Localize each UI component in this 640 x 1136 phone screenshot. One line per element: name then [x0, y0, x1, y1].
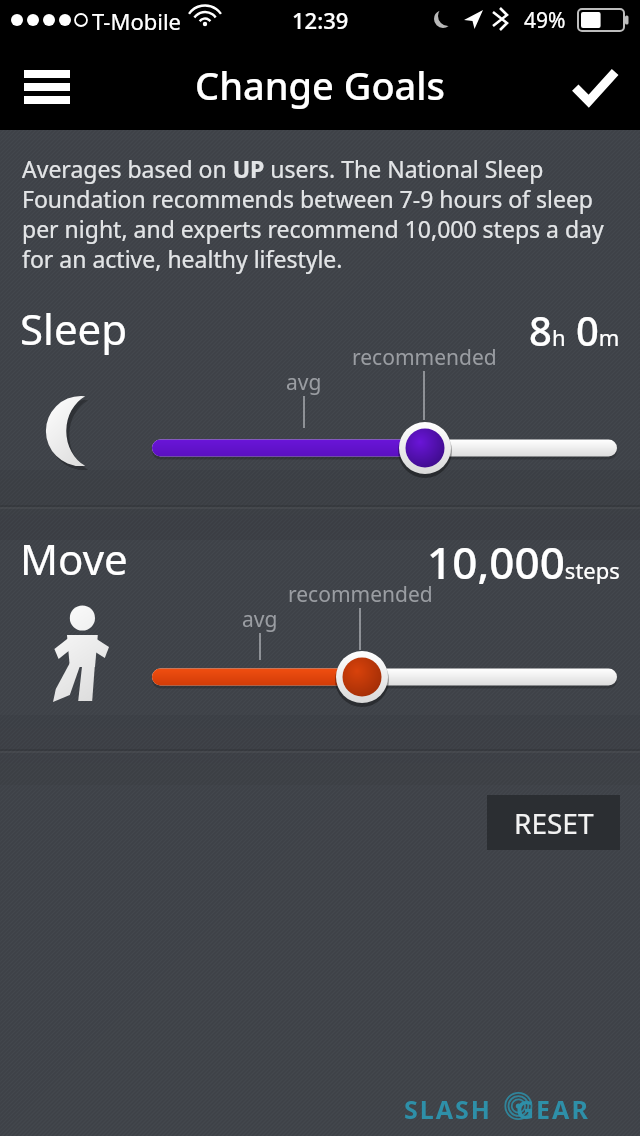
staticText: 10,000steps [427, 532, 620, 584]
button[interactable]: Menu [8, 48, 86, 126]
staticText: Averages based on UP users. The National… [22, 153, 622, 283]
staticText: avg [286, 368, 322, 396]
staticText: T-Mobile [92, 6, 181, 36]
staticText: RESET [514, 804, 594, 842]
staticText: avg [242, 605, 278, 633]
button[interactable]: Done [556, 48, 634, 126]
staticText: SLASH [404, 1092, 492, 1126]
staticText: recommended [352, 343, 497, 371]
staticText: Change Goals [195, 59, 446, 111]
staticText: 12:39 [292, 5, 349, 35]
staticText: Move [20, 530, 128, 587]
button[interactable]: Sleep goal slider [140, 415, 640, 485]
staticText: 8h 0m [529, 303, 620, 353]
button[interactable]: RESET [487, 795, 620, 850]
staticText: Sleep [20, 300, 128, 357]
staticText: 49% [524, 6, 566, 35]
button[interactable]: Move goal slider [140, 645, 640, 715]
staticText: GEAR [516, 1092, 590, 1126]
staticText: recommended [288, 580, 433, 608]
